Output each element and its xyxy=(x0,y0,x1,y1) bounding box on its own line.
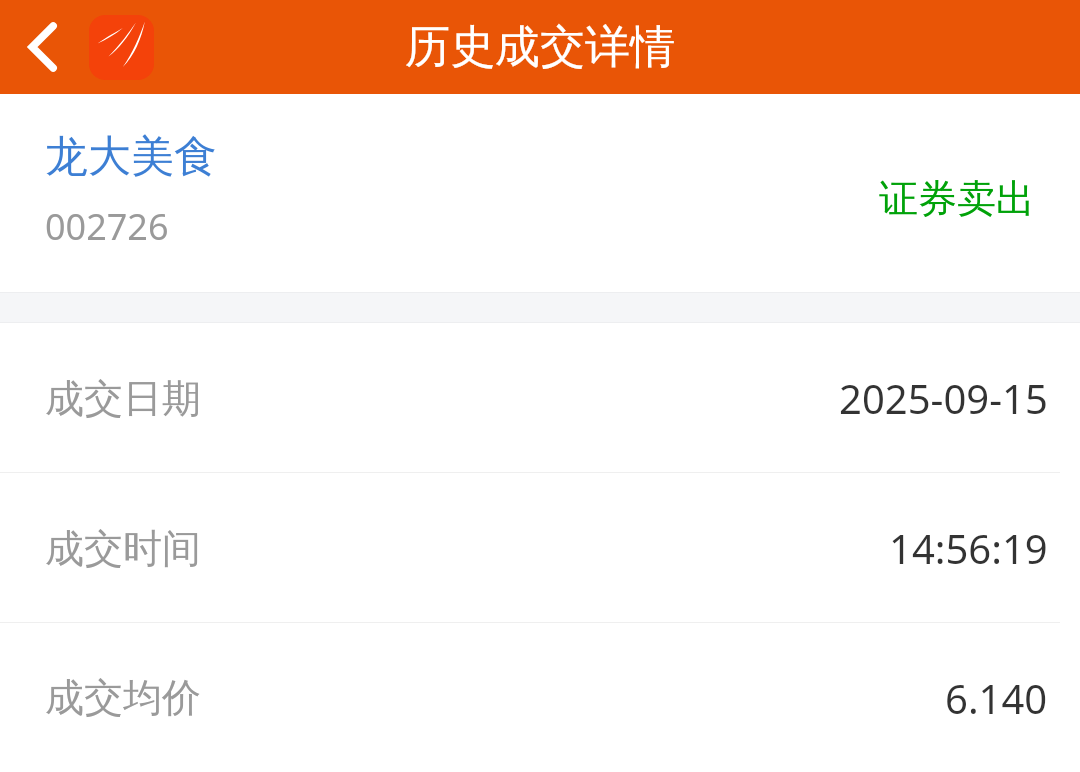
button[interactable]: 成交日期 xyxy=(0,323,1080,473)
staticText: 2025-09-15 xyxy=(839,371,1048,425)
button[interactable]: 成交时间 xyxy=(0,473,1080,623)
button[interactable]: App logo xyxy=(86,12,157,83)
staticText: 成交日期 xyxy=(45,374,201,423)
staticText: 002726 xyxy=(45,202,169,251)
staticText: 14:56:19 xyxy=(889,521,1048,575)
staticText: 成交均价 xyxy=(45,673,201,722)
button[interactable]: Back xyxy=(0,0,86,94)
staticText: 历史成交详情 xyxy=(0,19,1080,76)
staticText: 成交时间 xyxy=(45,524,201,573)
staticText: 证券卖出 xyxy=(879,174,1035,223)
button[interactable]: 成交均价 xyxy=(0,623,1080,772)
staticText: 6.140 xyxy=(945,671,1048,725)
staticText: 龙大美食 xyxy=(45,130,217,184)
button[interactable]: 龙大美食 xyxy=(0,94,1080,292)
